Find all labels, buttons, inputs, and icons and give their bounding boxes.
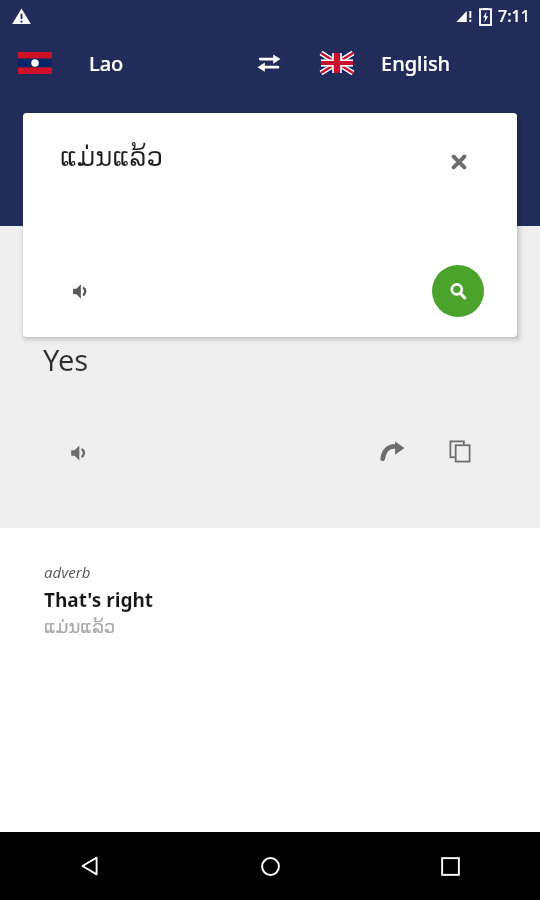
button[interactable]: Share xyxy=(371,429,415,473)
button[interactable]: Translate xyxy=(432,265,484,317)
staticText: That's right xyxy=(44,587,154,613)
staticText: adverb xyxy=(44,562,91,582)
button[interactable]: Listen xyxy=(58,431,102,475)
button[interactable]: Swap languages xyxy=(236,32,302,94)
button[interactable]: adverb xyxy=(44,562,540,637)
button[interactable]: English xyxy=(302,32,540,94)
staticText: 7:11 xyxy=(498,5,530,27)
staticText: ແມ່ນແລ້ວ xyxy=(44,616,116,637)
button[interactable]: ແມ່ນແລ້ວ xyxy=(23,113,517,337)
staticText: Yes xyxy=(43,340,89,379)
staticText: ແມ່ນແລ້ວ xyxy=(60,142,163,172)
button[interactable]: Back xyxy=(0,832,180,900)
button[interactable]: Lao xyxy=(0,32,236,94)
button[interactable]: Home xyxy=(180,832,360,900)
button[interactable]: Listen to input xyxy=(59,269,103,313)
staticText: Lao xyxy=(89,50,124,77)
button[interactable]: Recent apps xyxy=(360,832,540,900)
button[interactable]: Clear xyxy=(437,140,481,184)
staticText: English xyxy=(381,50,451,77)
button[interactable]: Copy xyxy=(438,429,482,473)
